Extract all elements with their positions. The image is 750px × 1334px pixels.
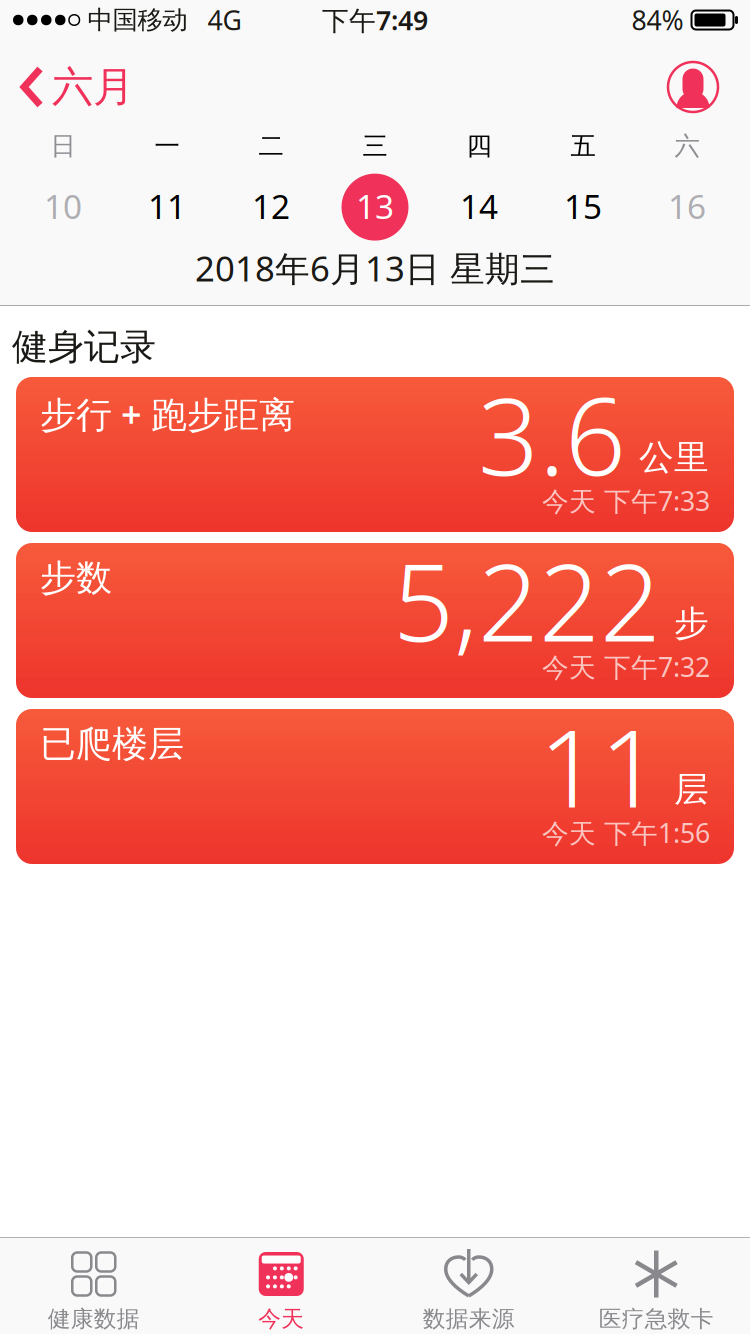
staticText: 今天 下午7:32 (542, 649, 710, 684)
staticText: 2018年6月13日 星期三 (195, 245, 555, 291)
staticText: 下午7:49 (322, 2, 428, 38)
button[interactable]: 健康数据 (0, 1251, 187, 1333)
staticText: 步行 + 跑步距离 (40, 390, 295, 438)
staticText: 84% (631, 2, 683, 38)
staticText: 医疗急救卡 (599, 1305, 714, 1333)
staticText: 11 (148, 184, 186, 228)
staticText: 五 (570, 130, 595, 162)
staticText: 数据来源 (423, 1305, 515, 1333)
staticText: 14 (460, 184, 498, 228)
staticText: 3.6 (478, 363, 626, 505)
staticText: 二 (258, 130, 283, 162)
staticText: 健身记录 (12, 325, 156, 369)
staticText: 六月 (52, 62, 134, 112)
staticText: 三 (362, 130, 387, 162)
staticText: 层 (674, 768, 709, 811)
button[interactable]: 步数 (16, 543, 734, 698)
button[interactable]: 二 (219, 130, 323, 240)
button[interactable]: 一 (115, 130, 219, 240)
button[interactable]: 四 (427, 130, 531, 240)
staticText: 健康数据 (48, 1305, 140, 1333)
staticText: 11 (539, 695, 661, 837)
staticText: 16 (668, 184, 706, 228)
button[interactable]: 三 (323, 130, 427, 240)
staticText: 15 (564, 184, 602, 228)
staticText: 六 (674, 130, 699, 162)
button[interactable]: 今天 (187, 1251, 375, 1333)
button[interactable]: 返回六月 (20, 62, 134, 112)
button[interactable]: 步行 + 跑步距离 (16, 377, 734, 532)
staticText: 今天 (258, 1305, 304, 1333)
staticText: 一 (154, 130, 179, 162)
staticText: 日 (50, 130, 75, 162)
staticText: 今天 下午7:33 (542, 483, 710, 518)
staticText: 12 (252, 184, 290, 228)
staticText: 10 (44, 184, 82, 228)
staticText: 4G (207, 2, 241, 38)
staticText: 5,222 (393, 529, 661, 671)
button[interactable]: 六 (635, 130, 739, 240)
button[interactable]: 日 (11, 130, 115, 240)
staticText: 步 (674, 602, 709, 645)
button[interactable]: 个人资料 (668, 62, 718, 112)
staticText: 中国移动 (87, 4, 187, 35)
button[interactable]: 医疗急救卡 (562, 1251, 750, 1333)
button[interactable]: 已爬楼层 (16, 709, 734, 864)
staticText: 步数 (40, 556, 112, 600)
button[interactable]: 五 (531, 130, 635, 240)
staticText: 公里 (639, 436, 709, 479)
staticText: 已爬楼层 (40, 722, 184, 766)
button[interactable]: 数据来源 (375, 1251, 562, 1333)
staticText: 今天 下午1:56 (542, 815, 710, 850)
staticText: 13 (356, 184, 394, 228)
staticText: 四 (466, 130, 491, 162)
